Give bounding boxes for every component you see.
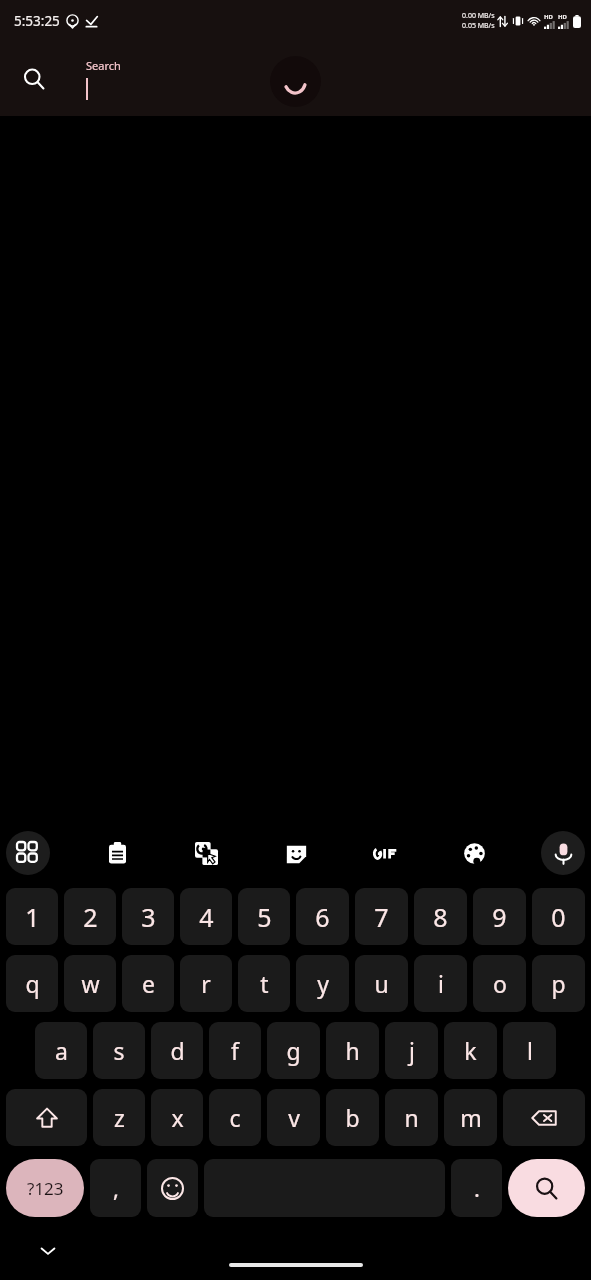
button[interactable]: Shift [6, 1089, 87, 1146]
button[interactable]: Themes [452, 831, 496, 875]
button[interactable]: m [444, 1089, 497, 1146]
button[interactable]: 3 [122, 888, 174, 945]
button[interactable]: s [93, 1022, 145, 1079]
staticText: i [438, 968, 444, 999]
button[interactable]: w [64, 955, 116, 1012]
button[interactable]: Apps [6, 831, 50, 875]
staticText: l [527, 1035, 533, 1066]
staticText: p [551, 968, 566, 999]
button[interactable]: 0 [532, 888, 585, 945]
button[interactable]: 5 [238, 888, 290, 945]
button[interactable]: 9 [473, 888, 526, 945]
button[interactable]: z [93, 1089, 145, 1146]
button[interactable]: Search [508, 1159, 585, 1217]
button[interactable]: Stickers [274, 831, 318, 875]
staticText: 7 [374, 900, 389, 934]
staticText: 0.05 MB/s [462, 21, 495, 31]
button[interactable]: f [209, 1022, 261, 1079]
staticText: 6 [315, 900, 330, 934]
button[interactable]: j [385, 1022, 438, 1079]
staticText: 1 [25, 900, 40, 934]
staticText: 2 [83, 900, 98, 934]
button[interactable]: 2 [64, 888, 116, 945]
staticText: x [171, 1102, 184, 1133]
staticText: f [231, 1035, 239, 1066]
button[interactable]: h [326, 1022, 379, 1079]
staticText: 4 [199, 900, 214, 934]
button[interactable]: b [326, 1089, 379, 1146]
button[interactable]: Emoji [147, 1159, 198, 1217]
button[interactable]: d [151, 1022, 203, 1079]
staticText: 0.00 MB/s [462, 11, 495, 21]
staticText: z [114, 1102, 125, 1133]
button[interactable]: p [532, 955, 585, 1012]
staticText: t [260, 968, 269, 999]
staticText: HD [558, 13, 567, 21]
button[interactable]: GIF [363, 831, 407, 875]
staticText: v [288, 1102, 300, 1133]
button[interactable]: v [267, 1089, 320, 1146]
staticText: q [25, 968, 40, 999]
button[interactable]: Profile [270, 56, 321, 107]
button[interactable]: Backspace [503, 1089, 585, 1146]
staticText: a [55, 1035, 68, 1066]
staticText: r [201, 968, 211, 999]
button[interactable]: n [385, 1089, 438, 1146]
staticText: 0 [551, 900, 566, 934]
staticText: 8 [433, 900, 448, 934]
staticText: c [229, 1102, 241, 1133]
staticText: 9 [492, 900, 507, 934]
staticText: , [113, 1173, 119, 1203]
staticText: m [460, 1102, 482, 1133]
button[interactable]: Clipboard [95, 831, 139, 875]
button[interactable]: Search [10, 55, 58, 103]
button[interactable]: 1 [6, 888, 58, 945]
button[interactable]: x [151, 1089, 203, 1146]
staticText: h [345, 1035, 360, 1066]
button[interactable]: 4 [180, 888, 232, 945]
button[interactable]: 6 [296, 888, 349, 945]
button[interactable]: k [444, 1022, 497, 1079]
button[interactable]: a [35, 1022, 87, 1079]
button[interactable]: , [90, 1159, 141, 1217]
staticText: ?123 [27, 1177, 64, 1200]
staticText: b [345, 1102, 360, 1133]
button[interactable]: e [122, 955, 174, 1012]
staticText: y [317, 968, 329, 999]
staticText: 5:53:25 [14, 12, 60, 30]
staticText: Search [86, 58, 121, 73]
button[interactable]: u [355, 955, 408, 1012]
button[interactable]: 8 [414, 888, 467, 945]
button[interactable]: g [267, 1022, 320, 1079]
staticText: 5 [257, 900, 272, 934]
button[interactable]: Hide keyboard [30, 1233, 66, 1269]
button[interactable]: t [238, 955, 290, 1012]
button[interactable]: q [6, 955, 58, 1012]
button[interactable]: l [503, 1022, 556, 1079]
button[interactable]: ?123 [6, 1159, 84, 1217]
staticText: HD [544, 13, 553, 21]
staticText: e [142, 968, 155, 999]
button[interactable]: 7 [355, 888, 408, 945]
button[interactable]: Voice input [541, 831, 585, 875]
staticText: o [493, 968, 507, 999]
button[interactable]: o [473, 955, 526, 1012]
staticText: . [474, 1173, 480, 1203]
staticText: s [113, 1035, 125, 1066]
button[interactable]: y [296, 955, 349, 1012]
staticText: k [464, 1035, 477, 1066]
button[interactable]: . [451, 1159, 502, 1217]
staticText: u [374, 968, 389, 999]
staticText: n [404, 1102, 419, 1133]
button[interactable]: c [209, 1089, 261, 1146]
button[interactable]: i [414, 955, 467, 1012]
staticText: j [409, 1035, 415, 1066]
button[interactable]: Translate [184, 831, 228, 875]
staticText: 3 [141, 900, 156, 934]
staticText: g [286, 1035, 301, 1066]
staticText: w [81, 968, 100, 999]
button[interactable]: r [180, 955, 232, 1012]
staticText: d [170, 1035, 185, 1066]
